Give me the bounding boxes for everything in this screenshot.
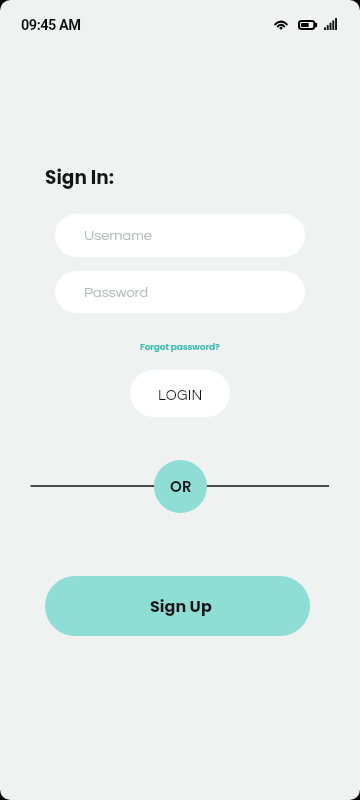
other: Wi-Fi xyxy=(273,18,289,30)
button[interactable]: OR xyxy=(154,460,207,513)
staticText: LOGIN xyxy=(158,388,203,403)
staticText: OR xyxy=(170,476,192,497)
staticText: Username xyxy=(84,228,152,243)
button[interactable]: Password xyxy=(55,271,305,313)
button[interactable]: Forgot password? xyxy=(0,338,360,356)
other: Battery xyxy=(298,20,317,30)
staticText: Forgot password? xyxy=(140,341,220,354)
button[interactable]: Sign Up xyxy=(45,576,310,636)
other: Cellular signal xyxy=(324,18,337,30)
staticText: Password xyxy=(84,285,149,300)
staticText: 09:45 AM xyxy=(21,17,81,34)
button[interactable]: LOGIN xyxy=(130,370,230,417)
staticText: Sign Up xyxy=(150,595,212,617)
staticText: Sign In: xyxy=(45,165,114,191)
button[interactable]: Username xyxy=(55,214,305,257)
